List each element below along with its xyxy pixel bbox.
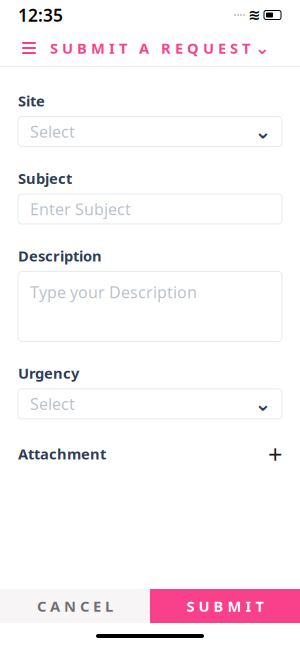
staticText: 12:35 bbox=[18, 3, 63, 26]
button[interactable]: S U B M I T A R E Q U E S T bbox=[50, 38, 270, 58]
button[interactable]: C A N C E L bbox=[0, 589, 150, 623]
staticText: + bbox=[268, 437, 282, 471]
button[interactable]: Type your Description bbox=[18, 271, 282, 341]
staticText: C A N C E L bbox=[37, 596, 113, 616]
staticText: Select bbox=[30, 393, 75, 414]
staticText: ⌄ bbox=[254, 120, 271, 143]
staticText: ≋ bbox=[248, 7, 260, 23]
button[interactable]: Select bbox=[18, 389, 282, 419]
button[interactable]: Menu bbox=[18, 38, 40, 58]
staticText: Type your Description bbox=[30, 281, 197, 303]
staticText: S U B M I T bbox=[186, 596, 263, 616]
staticText: Select bbox=[30, 121, 75, 142]
button[interactable]: Enter Subject bbox=[18, 194, 282, 224]
button[interactable]: Select bbox=[18, 116, 282, 146]
staticText: ⌄ bbox=[254, 393, 271, 415]
button[interactable]: Attachment bbox=[18, 443, 282, 465]
staticText: Site bbox=[18, 91, 45, 110]
staticText: ⌄ bbox=[255, 38, 270, 58]
staticText: Subject bbox=[18, 168, 72, 188]
staticText: S U B M I T A R E Q U E S T bbox=[50, 38, 250, 58]
button[interactable]: S U B M I T bbox=[150, 589, 300, 623]
staticText: Description bbox=[18, 246, 102, 265]
staticText: Urgency bbox=[18, 363, 79, 383]
staticText: Attachment bbox=[18, 444, 106, 464]
staticText: Enter Subject bbox=[30, 198, 131, 219]
